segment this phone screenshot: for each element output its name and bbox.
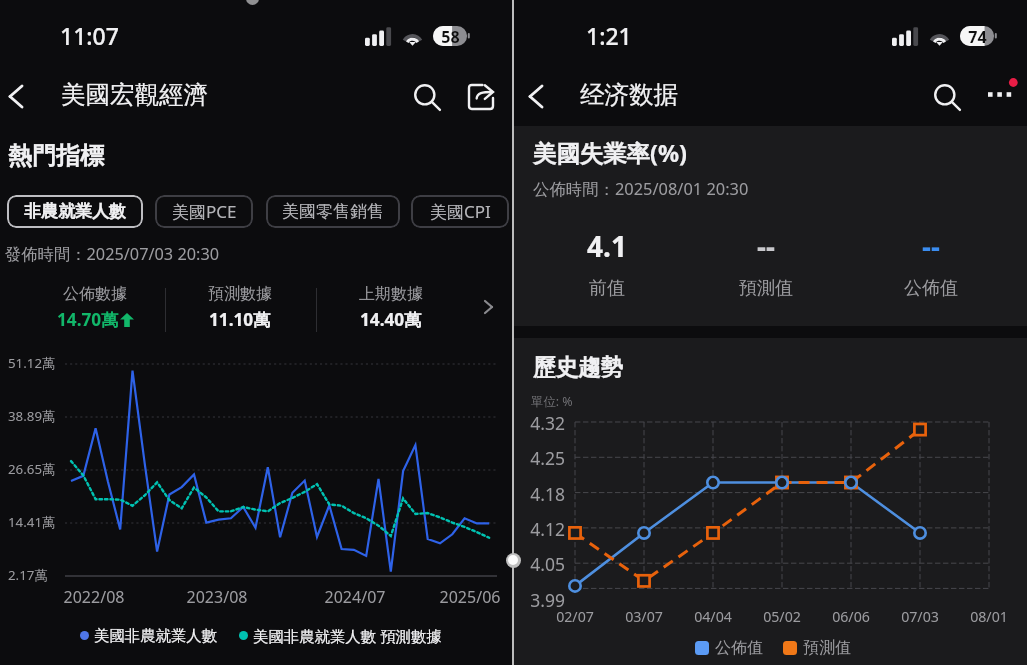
staticText: 3.99 [522, 588, 565, 612]
button[interactable]: 公佈數據 [0, 284, 512, 336]
staticText: 公佈時間：2025/08/01 20:30 [533, 177, 749, 199]
staticText: 14.70萬 [57, 308, 119, 331]
staticText: 74 [968, 26, 987, 46]
staticText: 02/07 [540, 607, 610, 626]
staticText: 前值 [589, 277, 625, 300]
staticText: 預測值 [739, 277, 793, 300]
staticText: 非農就業人數 [24, 201, 126, 222]
staticText: 公佈數據 [63, 284, 127, 304]
staticText: 2.17萬 [8, 566, 48, 584]
staticText: 2025/06 [430, 586, 510, 608]
staticText: 預測值 [803, 638, 851, 658]
button[interactable]: 美國零售銷售 [266, 195, 400, 228]
button[interactable]: 美國PCE [155, 195, 253, 228]
staticText: 2022/08 [54, 586, 134, 608]
staticText: 美國非農就業人數 預測數據 [253, 626, 442, 644]
staticText: 美國失業率(%) [533, 137, 687, 169]
button[interactable]: More options [976, 74, 1022, 120]
staticText: 1:21 [586, 20, 632, 51]
staticText: 美國宏觀經濟 [61, 79, 208, 110]
button[interactable]: Share [458, 74, 504, 120]
staticText: 14.41萬 [8, 513, 56, 531]
staticText: 58 [441, 26, 460, 46]
staticText: 公佈值 [904, 277, 958, 300]
staticText: 美國零售銷售 [282, 201, 384, 222]
staticText: 4.05 [522, 552, 565, 576]
staticText: 4.25 [522, 446, 565, 470]
staticText: 發佈時間：2025/07/03 20:30 [5, 243, 220, 265]
staticText: 04/04 [678, 607, 748, 626]
staticText: 26.65萬 [8, 460, 56, 478]
button[interactable]: Search [404, 74, 450, 120]
staticText: 07/03 [885, 607, 955, 626]
button[interactable]: Back [514, 74, 558, 118]
staticText: 4.18 [522, 482, 565, 506]
staticText: 熱門指標 [8, 141, 104, 171]
staticText: 上期數據 [359, 284, 423, 304]
staticText: 2023/08 [177, 586, 257, 608]
staticText: 預測數據 [208, 284, 272, 304]
button[interactable]: 非農就業人數 [7, 195, 143, 228]
staticText: 08/01 [954, 607, 1024, 626]
staticText: 51.12萬 [8, 354, 56, 372]
staticText: 11:07 [60, 20, 119, 51]
staticText: 06/06 [816, 607, 886, 626]
button[interactable]: Search [924, 74, 970, 120]
staticText: 38.89萬 [8, 407, 56, 425]
staticText: 4.12 [522, 517, 565, 541]
staticText: 美國PCE [172, 200, 237, 223]
staticText: 11.10萬 [209, 308, 271, 331]
staticText: 05/02 [747, 607, 817, 626]
staticText: 4.32 [522, 411, 565, 435]
staticText: 经济数据 [580, 79, 678, 110]
button[interactable]: Back [0, 74, 38, 118]
staticText: 美國非農就業人數 [94, 626, 218, 644]
staticText: 03/07 [609, 607, 679, 626]
staticText: 歷史趨勢 [533, 353, 623, 381]
staticText: 2024/07 [315, 586, 395, 608]
staticText: 4.1 [587, 227, 627, 265]
button[interactable]: 美國CPI [411, 195, 509, 228]
staticText: -- [757, 227, 775, 265]
staticText: 單位: % [531, 393, 573, 410]
staticText: -- [922, 227, 940, 265]
staticText: 公佈值 [715, 638, 763, 658]
staticText: 14.40萬 [360, 308, 422, 331]
staticText: 美國CPI [430, 200, 491, 223]
